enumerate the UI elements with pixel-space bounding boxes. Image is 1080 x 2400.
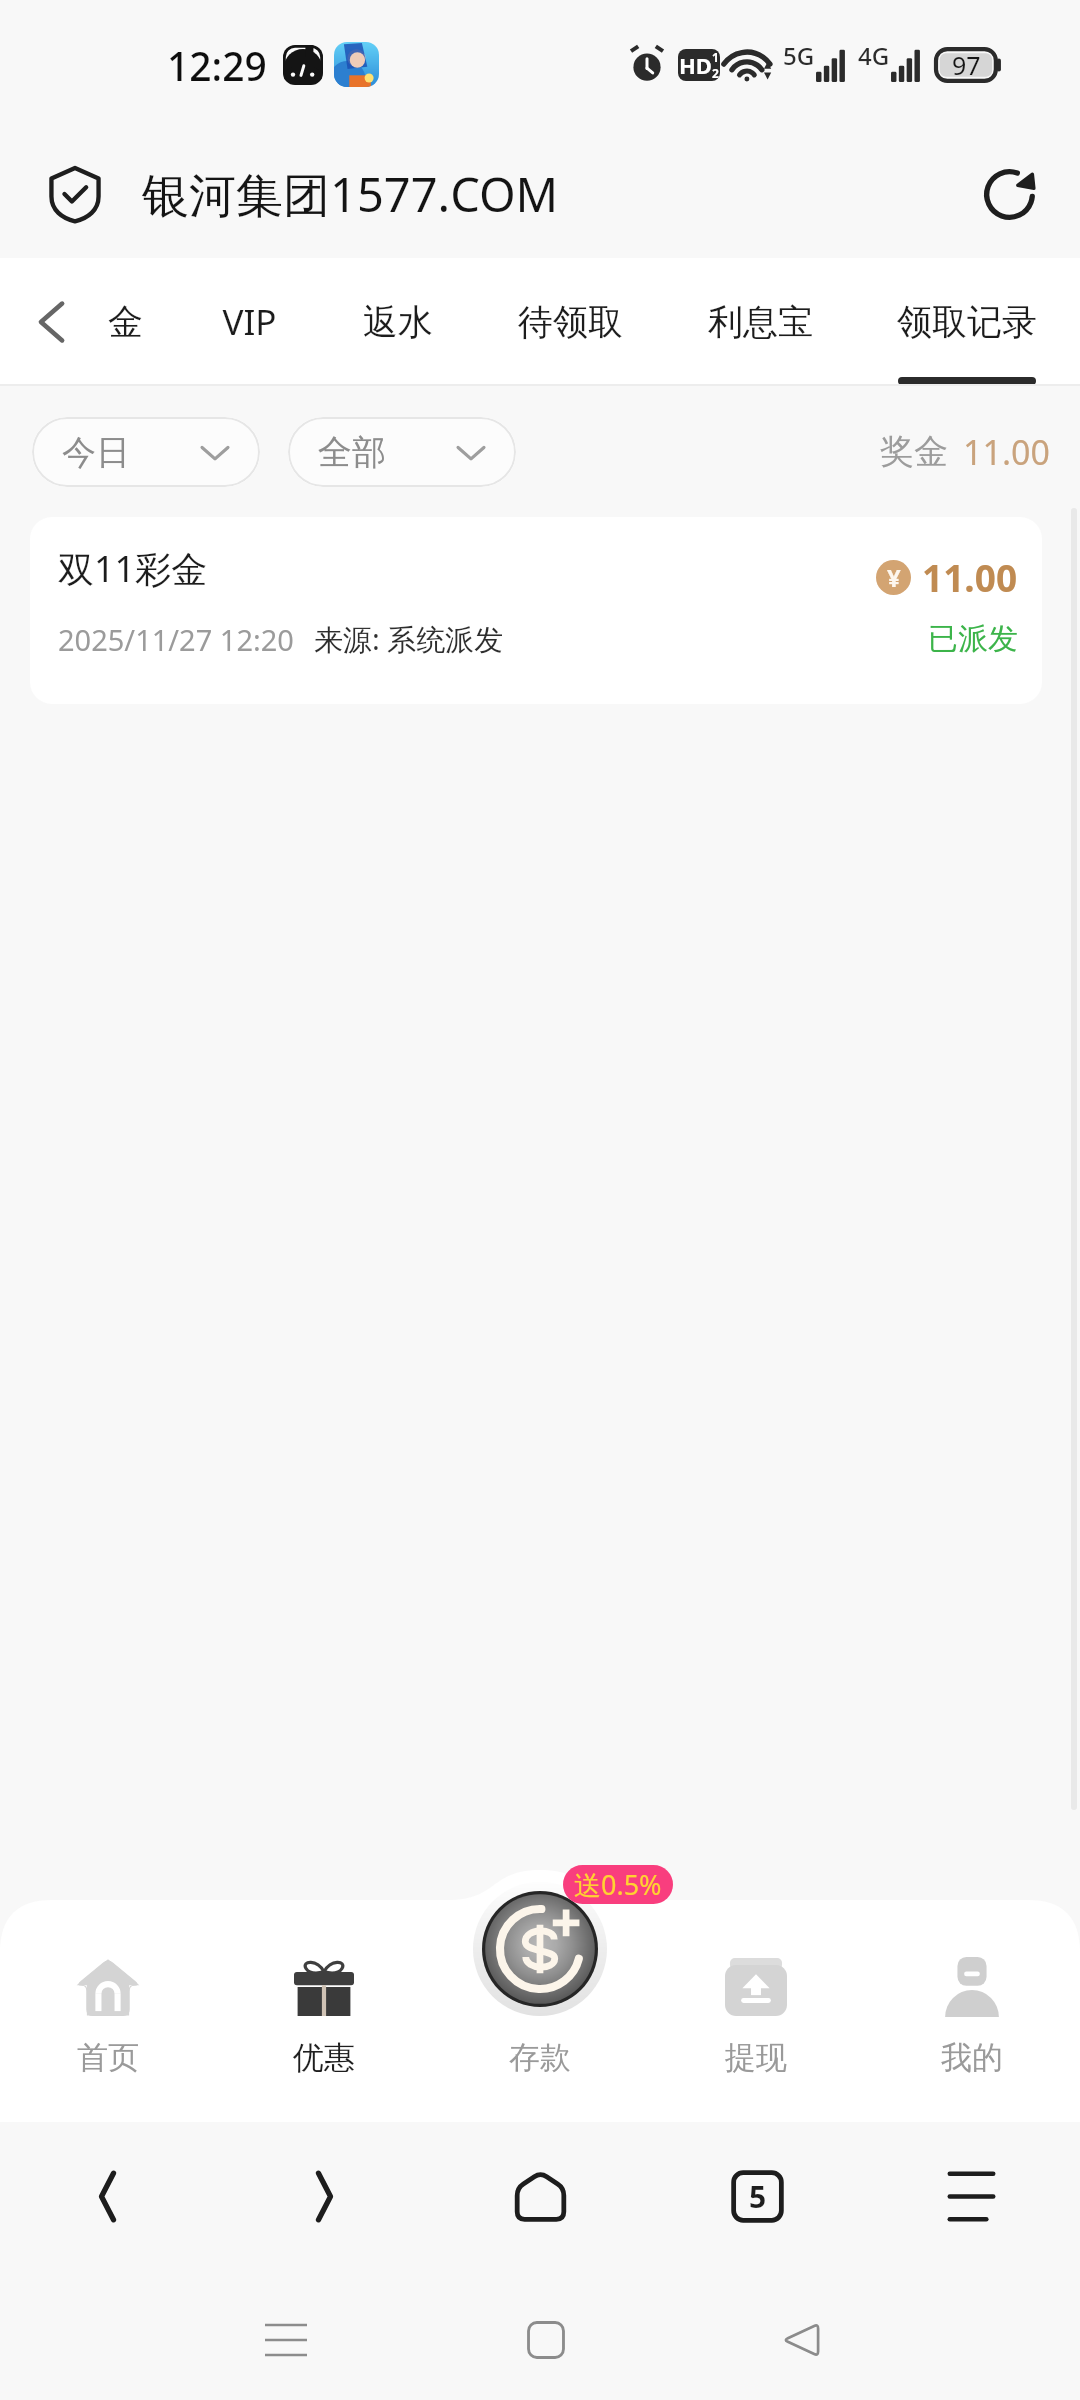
button[interactable]: Tabs	[712, 2117, 802, 2275]
button[interactable]: 待领取	[500, 258, 641, 386]
staticText: 存款	[509, 2038, 571, 2077]
staticText: 97	[952, 48, 981, 82]
staticText: 2025/11/27 12:20	[58, 620, 294, 659]
staticText: 送0.5%	[574, 1866, 662, 1903]
button[interactable]: 金	[92, 258, 159, 386]
staticText: 首页	[77, 2038, 139, 2077]
staticText: 已派发	[928, 620, 1018, 658]
staticText: HD	[679, 50, 712, 80]
button[interactable]: Back	[756, 2295, 846, 2385]
button[interactable]: 存款	[432, 1900, 648, 2122]
staticText: 5G	[783, 39, 815, 72]
staticText: 2	[712, 65, 719, 81]
button[interactable]: 领取记录	[878, 258, 1056, 386]
staticText: 返水	[363, 300, 433, 344]
staticText: 今日	[62, 431, 130, 474]
button[interactable]: 存款	[473, 1882, 607, 2016]
staticText: 11.00	[922, 552, 1018, 602]
button[interactable]: 双11彩金	[30, 517, 1042, 704]
staticText: VIP	[222, 298, 277, 346]
button[interactable]: Forward	[279, 2117, 369, 2275]
button[interactable]: Back	[62, 2117, 152, 2275]
staticText: 银河集团1577.COM	[142, 162, 559, 226]
staticText: 优惠	[293, 2038, 355, 2077]
button[interactable]: VIP	[179, 258, 320, 386]
staticText: 待领取	[518, 300, 623, 344]
button[interactable]: 返水	[346, 258, 450, 386]
staticText: 5	[749, 2176, 767, 2217]
button[interactable]: 我的	[864, 1900, 1080, 2122]
button[interactable]: Recents	[241, 2295, 331, 2385]
staticText: 来源: 系统派发	[314, 619, 504, 659]
staticText: 金	[108, 300, 143, 344]
staticText: 全部	[318, 431, 386, 474]
button[interactable]: 优惠	[216, 1900, 432, 2122]
staticText: 1	[712, 49, 719, 65]
button[interactable]: Refresh	[954, 139, 1064, 249]
staticText: 双11彩金	[58, 544, 208, 593]
staticText: 提现	[725, 2038, 787, 2077]
staticText: 利息宝	[708, 300, 813, 344]
staticText: 我的	[941, 2038, 1003, 2077]
button[interactable]: 全部	[288, 417, 516, 487]
button[interactable]: 首页	[0, 1900, 216, 2122]
staticText: 12:29	[167, 39, 267, 92]
staticText: 奖金	[880, 430, 948, 473]
button[interactable]: 提现	[648, 1900, 864, 2122]
button[interactable]: Home	[501, 2295, 591, 2385]
button[interactable]: 今日	[32, 417, 260, 487]
staticText: 领取记录	[897, 300, 1037, 344]
button[interactable]: Menu	[926, 2117, 1016, 2275]
staticText: ¥	[887, 561, 901, 594]
button[interactable]: Home	[495, 2117, 585, 2275]
button[interactable]: 利息宝	[690, 258, 831, 386]
staticText: 11.00	[963, 429, 1050, 475]
button[interactable]: Back	[12, 282, 92, 362]
staticText: 4G	[858, 39, 890, 72]
